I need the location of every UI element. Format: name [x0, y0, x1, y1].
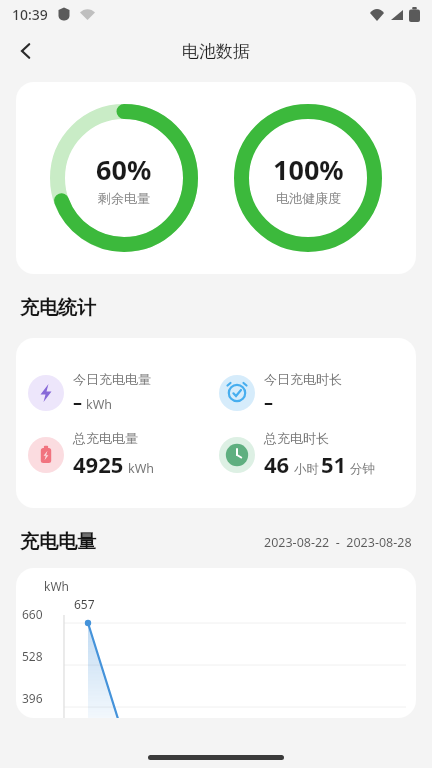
staticText: 396 [22, 690, 43, 706]
button[interactable]: 今日充电电量 [28, 371, 219, 415]
staticText: 电池数据 [182, 41, 250, 62]
button[interactable]: 今日充电电量 [16, 338, 416, 508]
staticText: kWh [86, 396, 113, 413]
staticText: 657 [74, 596, 95, 612]
button[interactable]: 总充电电量 [28, 430, 219, 479]
staticText: 4925 [73, 449, 124, 479]
button[interactable]: kWh [16, 568, 416, 718]
staticText: 2023-08-22 - 2023-08-28 [264, 534, 412, 551]
button[interactable]: 60% [16, 82, 416, 274]
staticText: 充电电量 [20, 530, 96, 554]
staticText: 总充电时长 [264, 430, 329, 446]
staticText: 528 [22, 648, 43, 664]
staticText: 总充电电量 [73, 430, 138, 446]
button[interactable]: 总充电时长 [219, 430, 410, 479]
staticText: – [264, 390, 273, 415]
staticText: 电池健康度 [276, 190, 341, 206]
staticText: 51 [321, 449, 347, 479]
staticText: 今日充电电量 [73, 371, 151, 387]
staticText: 分钟 [350, 461, 375, 477]
staticText: 今日充电时长 [264, 371, 342, 387]
staticText: 60% [96, 151, 152, 188]
staticText: 剩余电量 [98, 190, 150, 206]
staticText: kWh [128, 460, 155, 477]
staticText: – [73, 390, 82, 415]
staticText: 10:39 [12, 5, 48, 24]
staticText: 充电统计 [20, 296, 96, 320]
staticText: 46 [264, 449, 290, 479]
button[interactable]: 今日充电时长 [219, 371, 410, 415]
staticText: kWh [44, 578, 69, 594]
staticText: 660 [22, 606, 43, 622]
staticText: 小时 [294, 461, 319, 477]
staticText: 100% [273, 151, 344, 188]
button[interactable]: Back [6, 31, 46, 71]
